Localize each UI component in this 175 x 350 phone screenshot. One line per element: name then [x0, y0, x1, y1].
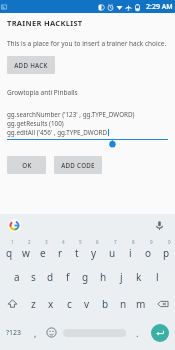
staticText: z — [31, 297, 36, 311]
staticText: i — [129, 246, 132, 260]
staticText: 4 — [62, 239, 65, 245]
button[interactable]: 2 — [17, 236, 34, 263]
staticText: v — [84, 297, 90, 311]
staticText: 7 — [114, 239, 117, 245]
button[interactable]: f — [59, 263, 76, 290]
button[interactable]: Emoji — [43, 317, 60, 348]
staticText: d — [47, 270, 54, 284]
button[interactable]: c — [60, 290, 78, 317]
staticText: 6 — [96, 239, 99, 245]
staticText: 2:29 AM — [146, 2, 173, 12]
staticText: a — [14, 270, 20, 284]
button[interactable]: s — [25, 263, 42, 290]
button[interactable]: v — [78, 290, 96, 317]
button[interactable]: h — [94, 263, 112, 290]
button[interactable]: 8 — [121, 236, 139, 263]
staticText: gg.searchNumber ('123' , gg.TYPE_DWORD) — [7, 110, 135, 119]
button[interactable]: ADD HACK — [7, 56, 55, 74]
staticText: TRAINER HACKLIST — [7, 18, 83, 28]
button[interactable]: 7 — [103, 236, 121, 263]
staticText: OK — [22, 161, 32, 169]
staticText: 0 — [168, 239, 171, 245]
staticText: x — [48, 297, 54, 311]
staticText: 5 — [79, 239, 82, 245]
staticText: f — [66, 270, 70, 284]
button[interactable]: Enter — [145, 317, 175, 348]
button[interactable]: Google search — [8, 219, 21, 232]
button[interactable]: 3 — [34, 236, 51, 263]
staticText: e — [40, 246, 46, 260]
button[interactable]: Backspace — [150, 290, 175, 317]
button[interactable]: 0 — [157, 236, 175, 263]
staticText: 9 — [150, 239, 153, 245]
button[interactable]: ADD CODE — [54, 156, 102, 174]
staticText: c — [67, 297, 72, 311]
button[interactable]: a — [8, 263, 25, 290]
staticText: 8 — [132, 239, 135, 245]
button[interactable]: 6 — [85, 236, 103, 263]
staticText: ADD CODE — [61, 161, 95, 169]
button[interactable]: , — [27, 317, 43, 348]
button[interactable]: n — [114, 290, 132, 317]
staticText: k — [136, 270, 142, 284]
button[interactable]: 9 — [139, 236, 157, 263]
staticText: h — [100, 270, 107, 284]
staticText: ADD HACK — [14, 61, 48, 69]
button[interactable]: g — [76, 263, 94, 290]
staticText: r — [58, 246, 63, 260]
staticText: s — [31, 270, 36, 284]
staticText: Growtopia anti Pinballs — [7, 88, 78, 97]
button[interactable]: 4 — [51, 236, 68, 263]
button[interactable]: Space — [60, 317, 129, 348]
staticText: g — [82, 270, 89, 284]
button[interactable]: z — [24, 290, 42, 317]
button[interactable]: 5 — [68, 236, 85, 263]
staticText: 3 — [45, 239, 48, 245]
staticText: p — [163, 246, 170, 260]
staticText: j — [120, 270, 123, 284]
button[interactable]: d — [42, 263, 59, 290]
staticText: gg.getResults (100) — [7, 119, 64, 128]
staticText: l — [156, 270, 159, 284]
staticText: 2 — [28, 239, 31, 245]
staticText: y — [91, 246, 97, 260]
button[interactable]: b — [96, 290, 114, 317]
button[interactable]: m — [132, 290, 150, 317]
staticText: . — [136, 327, 139, 339]
staticText: n — [120, 297, 127, 311]
staticText: u — [109, 246, 116, 260]
staticText: , — [34, 327, 37, 339]
staticText: 1 — [11, 239, 14, 245]
staticText: q — [6, 246, 13, 260]
button[interactable]: k — [130, 263, 148, 290]
staticText: ?123 — [6, 328, 22, 338]
staticText: This is a place for you to insert a trai… — [7, 39, 167, 48]
staticText: o — [145, 246, 152, 260]
button[interactable]: x — [42, 290, 60, 317]
button[interactable]: ?123 — [0, 317, 27, 348]
staticText: w — [22, 246, 30, 260]
button[interactable]: l — [148, 263, 166, 290]
button[interactable]: OK — [7, 156, 46, 174]
button[interactable]: j — [112, 263, 130, 290]
staticText: t — [75, 246, 79, 260]
staticText: m — [136, 297, 146, 311]
button[interactable]: . — [129, 317, 145, 348]
button[interactable]: Voice input — [153, 219, 166, 232]
button[interactable]: 1 — [0, 236, 17, 263]
staticText: gg.editAll ('456' , gg.TYPE_DWORD — [7, 128, 108, 137]
button[interactable]: Shift — [0, 290, 24, 317]
staticText: b — [102, 297, 109, 311]
